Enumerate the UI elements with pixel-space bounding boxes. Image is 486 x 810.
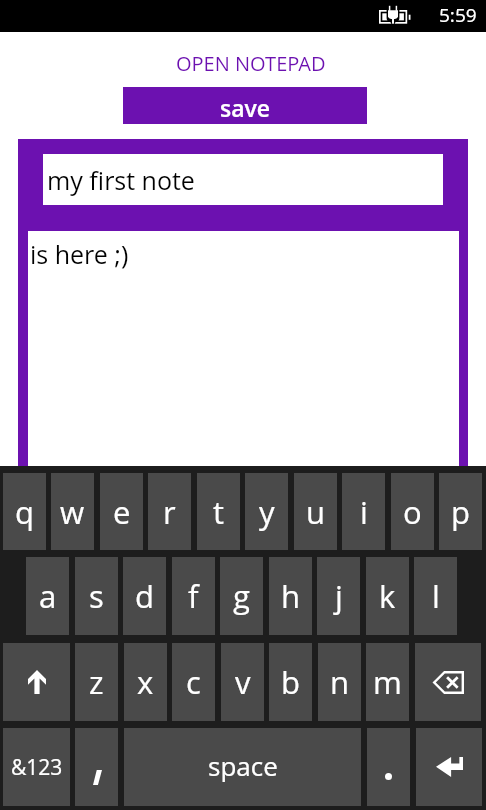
button[interactable]: j bbox=[317, 557, 360, 635]
button[interactable]: d bbox=[123, 557, 166, 635]
staticText: g bbox=[233, 575, 250, 617]
button[interactable]: x bbox=[124, 643, 167, 721]
button[interactable]: n bbox=[318, 643, 361, 721]
button[interactable]: Period bbox=[367, 728, 410, 806]
button[interactable]: Space bbox=[124, 728, 361, 806]
staticText: e bbox=[113, 491, 131, 533]
button[interactable]: q bbox=[3, 473, 46, 550]
staticText: 5:59 bbox=[439, 2, 477, 28]
staticText: is here ;) bbox=[30, 237, 129, 271]
staticText: f bbox=[188, 575, 199, 617]
button[interactable]: i bbox=[342, 473, 385, 550]
staticText: space bbox=[208, 748, 278, 783]
button[interactable]: Comma bbox=[75, 728, 118, 806]
staticText: s bbox=[89, 575, 104, 617]
staticText: k bbox=[379, 575, 396, 617]
button[interactable]: Shift bbox=[3, 643, 70, 721]
staticText: r bbox=[163, 491, 176, 533]
staticText: n bbox=[330, 661, 350, 703]
staticText: y bbox=[259, 491, 275, 533]
staticText: v bbox=[235, 661, 251, 703]
staticText: OPEN NOTEPAD bbox=[176, 50, 326, 76]
button[interactable]: b bbox=[269, 643, 312, 721]
staticText: &123 bbox=[11, 753, 63, 782]
staticText: x bbox=[137, 661, 154, 703]
staticText: l bbox=[432, 575, 440, 617]
staticText: o bbox=[403, 491, 422, 533]
button[interactable]: c bbox=[172, 643, 215, 721]
button[interactable]: p bbox=[439, 473, 482, 550]
button[interactable]: l bbox=[414, 557, 457, 635]
other: Battery charging bbox=[379, 10, 411, 31]
button[interactable]: Enter bbox=[416, 728, 482, 806]
staticText: a bbox=[39, 575, 57, 617]
staticText: w bbox=[60, 491, 85, 533]
button[interactable]: is here ;) bbox=[28, 231, 459, 810]
button[interactable]: u bbox=[294, 473, 337, 550]
staticText: j bbox=[335, 575, 343, 617]
button[interactable]: e bbox=[100, 473, 143, 550]
staticText: h bbox=[281, 575, 301, 617]
button[interactable]: h bbox=[269, 557, 312, 635]
button[interactable]: save bbox=[123, 87, 367, 124]
staticText: i bbox=[360, 491, 368, 533]
button[interactable]: r bbox=[148, 473, 191, 550]
staticText: b bbox=[281, 661, 300, 703]
button[interactable]: o bbox=[391, 473, 434, 550]
button[interactable]: f bbox=[172, 557, 215, 635]
staticText: my first note bbox=[47, 163, 195, 197]
button[interactable]: my first note bbox=[43, 154, 443, 205]
staticText: u bbox=[306, 491, 326, 533]
button[interactable]: z bbox=[75, 643, 118, 721]
button[interactable]: Backspace bbox=[415, 643, 481, 721]
button[interactable]: w bbox=[51, 473, 94, 550]
button[interactable]: t bbox=[197, 473, 240, 550]
staticText: q bbox=[15, 491, 34, 533]
staticText: z bbox=[89, 661, 104, 703]
staticText: t bbox=[213, 491, 224, 533]
button[interactable]: s bbox=[75, 557, 118, 635]
button[interactable]: v bbox=[221, 643, 264, 721]
button[interactable]: m bbox=[366, 643, 409, 721]
staticText: d bbox=[135, 575, 154, 617]
button[interactable]: g bbox=[220, 557, 263, 635]
button[interactable]: &123 bbox=[3, 728, 70, 806]
button[interactable]: k bbox=[366, 557, 409, 635]
staticText: m bbox=[373, 661, 402, 703]
button[interactable]: a bbox=[26, 557, 69, 635]
button[interactable]: y bbox=[245, 473, 288, 550]
staticText: p bbox=[451, 491, 470, 533]
staticText: c bbox=[186, 661, 201, 703]
staticText: save bbox=[220, 92, 271, 123]
